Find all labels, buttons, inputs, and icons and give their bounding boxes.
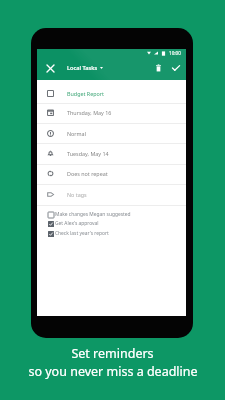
button[interactable]: Budget Report bbox=[37, 80, 186, 103]
staticText: Tuesday, May 14 bbox=[67, 150, 109, 157]
staticText: Budget Report bbox=[67, 90, 104, 97]
staticText: Set reminders bbox=[71, 345, 154, 362]
staticText: No tags bbox=[67, 191, 87, 198]
staticText: Local Tasks bbox=[67, 64, 98, 72]
button[interactable]: Normal bbox=[37, 124, 186, 144]
staticText: Thursday, May 16 bbox=[67, 109, 112, 116]
button[interactable]: Tuesday, May 14 bbox=[37, 144, 186, 164]
button[interactable]: Get Alex's approval bbox=[48, 219, 99, 228]
button[interactable]: Make changes Megan suggested bbox=[48, 210, 131, 219]
staticText: Check last year's report bbox=[55, 230, 109, 237]
button[interactable]: No tags bbox=[37, 185, 186, 205]
button[interactable]: Save bbox=[169, 61, 183, 75]
button[interactable]: Thursday, May 16 bbox=[37, 103, 186, 123]
button[interactable]: Close bbox=[43, 61, 57, 75]
button[interactable]: Delete bbox=[151, 61, 165, 75]
button[interactable]: Check last year's report bbox=[48, 229, 109, 238]
staticText: Make changes Megan suggested bbox=[55, 211, 131, 218]
button[interactable]: Local Tasks bbox=[67, 61, 103, 75]
staticText: so you never miss a deadline bbox=[28, 363, 198, 380]
staticText: 10:00 bbox=[169, 50, 181, 56]
staticText: Normal bbox=[67, 130, 87, 137]
staticText: Does not repeat bbox=[67, 170, 108, 177]
staticText: Get Alex's approval bbox=[55, 220, 99, 227]
button[interactable]: Does not repeat bbox=[37, 164, 186, 184]
